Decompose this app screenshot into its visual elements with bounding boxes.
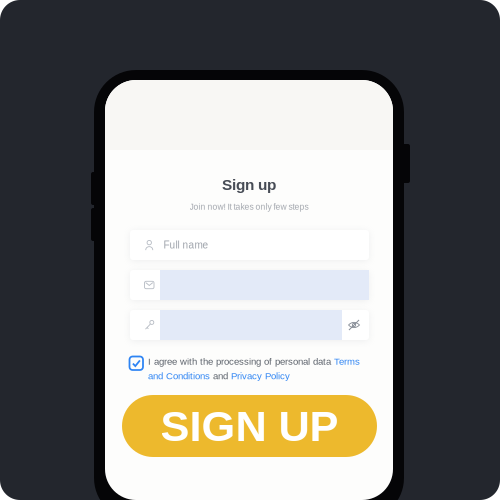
staticText: Privacy Policy	[231, 371, 290, 381]
staticText: Join now! It takes only few steps	[189, 202, 308, 211]
button[interactable]	[130, 310, 369, 340]
staticText: Full name	[163, 239, 208, 251]
button[interactable]: Full name	[130, 230, 369, 260]
staticText: and	[210, 371, 231, 381]
staticText: Terms	[334, 356, 360, 367]
button[interactable]: SIGN UP	[122, 395, 377, 457]
staticText: and Conditions	[148, 371, 210, 381]
button[interactable]: Agree to the terms	[129, 356, 143, 370]
staticText: Sign up	[222, 176, 276, 193]
staticText: I agree with the processing of personal …	[148, 356, 334, 367]
staticText: SIGN UP	[160, 402, 338, 450]
button[interactable]	[130, 270, 369, 300]
